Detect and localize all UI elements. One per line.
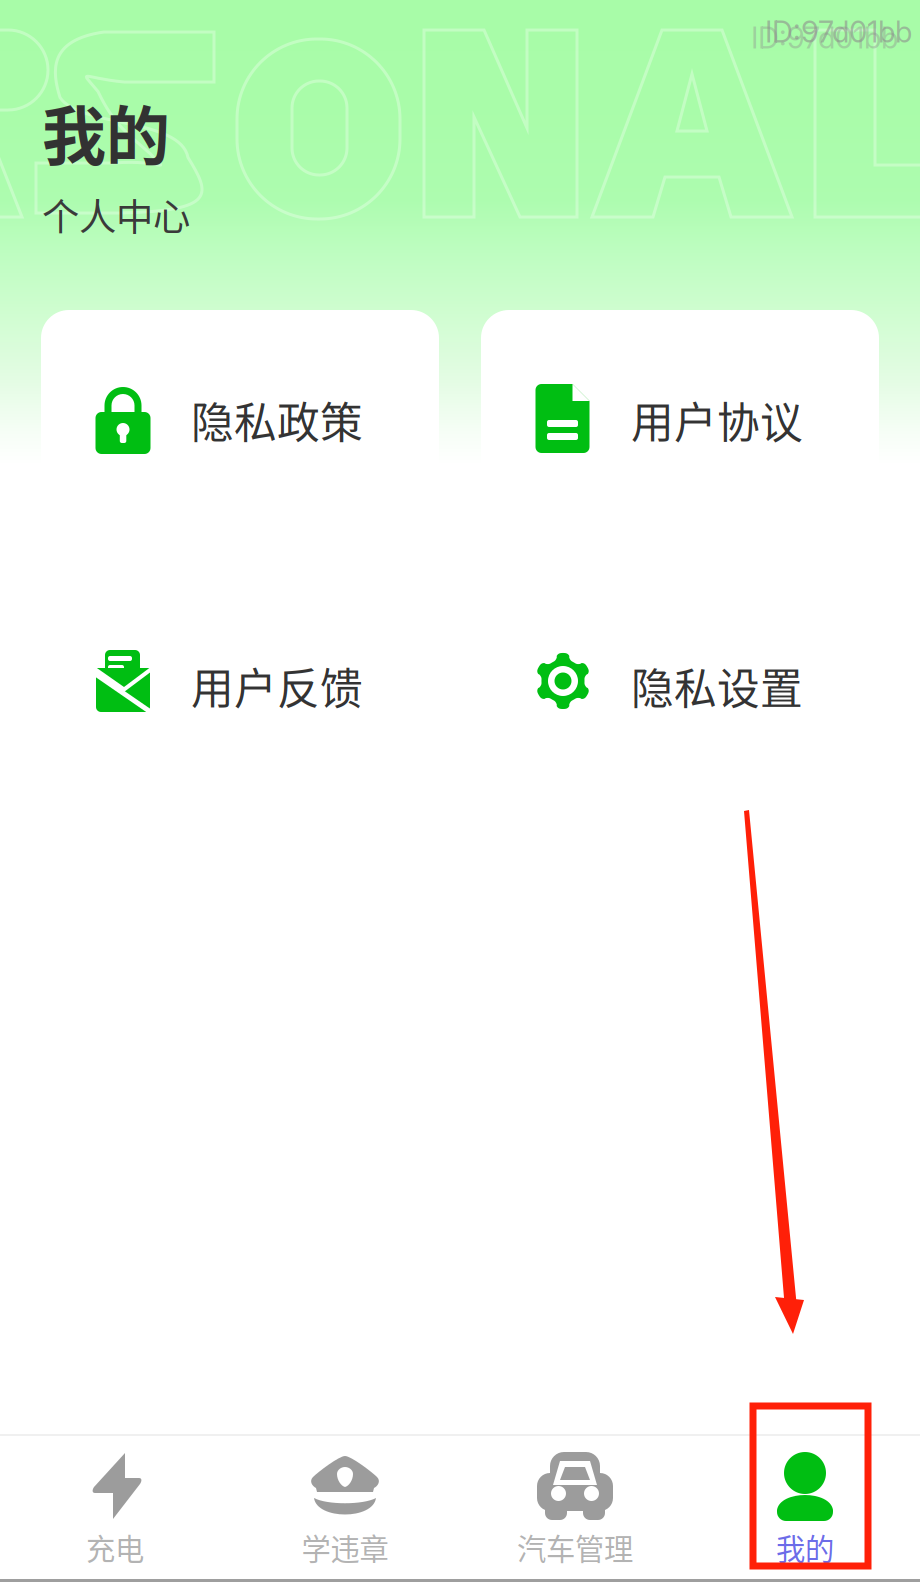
button[interactable]: 隐私政策 — [41, 310, 439, 530]
staticText: 汽车管理 — [517, 1526, 633, 1568]
staticText: 我的 — [42, 85, 170, 178]
button[interactable]: 学违章 — [230, 1436, 460, 1570]
staticText: 充电 — [86, 1526, 144, 1568]
button[interactable]: 我的 — [690, 1436, 920, 1570]
staticText: ID:97d01bb — [751, 20, 898, 55]
button[interactable]: 用户协议 — [481, 310, 879, 530]
staticText: 用户协议 — [631, 389, 803, 451]
staticText: 隐私政策 — [191, 389, 363, 451]
staticText: ID:97d01bb — [765, 14, 912, 49]
staticText: 个人中心 — [42, 188, 190, 242]
staticText: 用户反馈 — [191, 655, 363, 717]
button[interactable]: 用户反馈 — [41, 530, 439, 842]
button[interactable]: 隐私设置 — [481, 530, 879, 842]
staticText: 学违章 — [301, 1526, 388, 1568]
button[interactable]: 汽车管理 — [460, 1436, 690, 1570]
staticText: 隐私设置 — [631, 655, 803, 717]
button[interactable]: 充电 — [0, 1436, 230, 1570]
staticText: 我的 — [776, 1526, 834, 1568]
